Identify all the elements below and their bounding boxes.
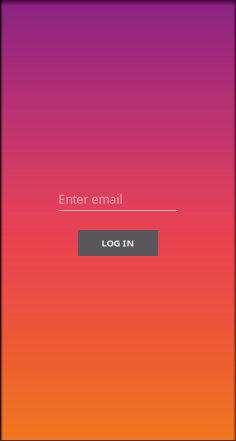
staticText: LOG IN: [101, 237, 134, 249]
button[interactable]: LOG IN: [78, 230, 158, 256]
staticText: Enter email: [58, 191, 122, 207]
button[interactable]: Enter email: [58, 187, 177, 211]
